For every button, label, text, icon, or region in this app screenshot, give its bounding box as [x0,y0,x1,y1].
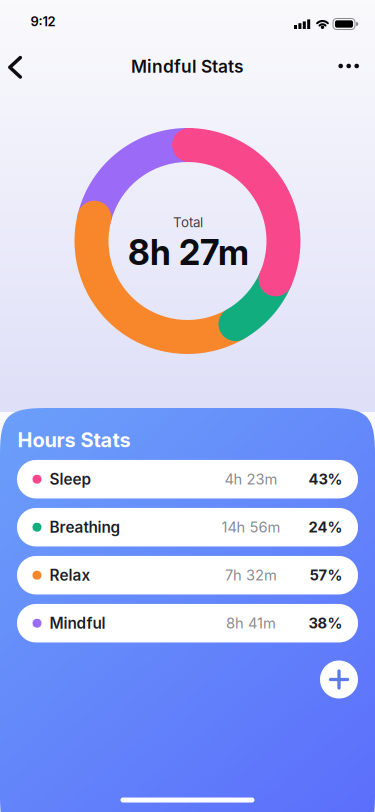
staticText: 38% [308,614,342,632]
staticText: 4h 23m [224,470,277,488]
staticText: 24% [308,518,342,536]
staticText: 57% [309,566,342,584]
staticText: 43% [308,470,342,488]
button[interactable]: Breathing [17,508,358,546]
button[interactable]: Relax [17,556,358,594]
button[interactable]: More [334,54,364,78]
staticText: 8h 41m [226,614,276,632]
staticText: Hours Stats [18,428,131,452]
staticText: Breathing [49,518,120,536]
button[interactable]: Mindful [17,604,358,642]
staticText: Total [173,214,203,230]
staticText: 8h 27m [128,231,249,273]
staticText: Sleep [49,470,91,488]
staticText: 9:12 [30,14,55,29]
staticText: Mindful [49,614,105,632]
staticText: Mindful Stats [131,56,244,77]
button[interactable]: Sleep [17,460,358,498]
staticText: 14h 56m [221,518,280,536]
staticText: 7h 32m [225,566,277,584]
button[interactable]: Back [4,54,26,80]
staticText: Relax [49,566,90,584]
button[interactable]: Add [320,660,358,698]
